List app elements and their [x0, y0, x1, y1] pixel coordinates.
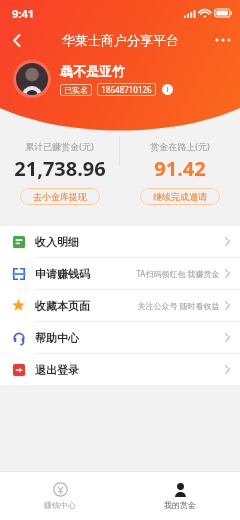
staticText: 关注公众号 随时看收益: [137, 300, 220, 311]
staticText: 我的赏金: [164, 500, 196, 510]
button[interactable]: Profile avatar: [13, 60, 51, 98]
button[interactable]: More options: [206, 26, 240, 54]
staticText: 骉不是亚竹: [60, 63, 125, 79]
button[interactable]: 我的赏金: [120, 472, 240, 520]
staticText: 收入明细: [35, 235, 79, 249]
button[interactable]: 继续完成邀请: [140, 188, 220, 205]
staticText: 已实名: [64, 85, 88, 95]
button[interactable]: 退出登录: [0, 354, 240, 385]
staticText: 累计已赚赏金(元): [25, 140, 94, 152]
staticText: 去小金库提现: [33, 191, 87, 202]
staticText: 18648710126: [101, 84, 152, 95]
staticText: 退出登录: [35, 363, 79, 377]
staticText: 申请赚钱码: [35, 267, 90, 281]
button[interactable]: 帮助中心: [0, 322, 240, 353]
staticText: 帮助中心: [35, 331, 79, 345]
button[interactable]: 收入明细: [0, 226, 240, 257]
staticText: 继续完成邀请: [153, 191, 207, 202]
staticText: 赚钱中心: [44, 500, 76, 510]
staticText: TA扫码领红包 我赚赏金: [136, 268, 220, 279]
staticText: 9:41: [12, 6, 34, 21]
staticText: 收藏本页面: [35, 299, 90, 313]
button[interactable]: 赚钱中心: [0, 472, 120, 520]
button[interactable]: 申请赚钱码: [0, 258, 240, 289]
staticText: i: [166, 85, 169, 95]
button[interactable]: 收藏本页面: [0, 290, 240, 321]
staticText: 赏金在路上(元): [150, 140, 210, 152]
button[interactable]: Information: [162, 84, 173, 95]
button[interactable]: 去小金库提现: [20, 188, 100, 205]
staticText: 华莱士商户分享平台: [62, 32, 179, 48]
button[interactable]: Back: [0, 26, 34, 54]
staticText: 21,738.96: [14, 155, 106, 182]
staticText: 91.42: [154, 155, 206, 182]
